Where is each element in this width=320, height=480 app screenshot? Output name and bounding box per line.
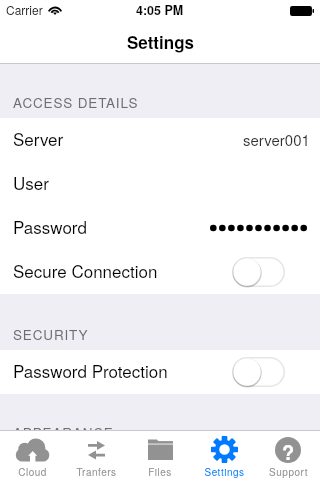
staticText: server001 <box>243 129 310 150</box>
staticText: Settings <box>204 465 245 479</box>
button[interactable]: Secure Connection <box>0 250 320 294</box>
staticText: Tranfers <box>76 465 117 479</box>
staticText: Server <box>13 126 64 150</box>
staticText: ACCESS DETAILS <box>13 93 139 112</box>
staticText: ? <box>282 437 295 462</box>
button[interactable]: Toggle <box>232 357 285 387</box>
staticText: APPEARANCE <box>13 423 114 442</box>
button[interactable]: Cloud <box>0 431 64 480</box>
button[interactable]: Server <box>0 118 320 162</box>
button[interactable]: ? <box>256 431 320 480</box>
staticText: Files <box>148 465 172 479</box>
button[interactable]: Files <box>128 431 192 480</box>
staticText: 4:05 PM <box>136 1 184 19</box>
staticText: User <box>13 170 49 194</box>
staticText: Secure Connection <box>13 258 158 282</box>
staticText: Password <box>13 214 87 238</box>
staticText: Cloud <box>18 465 47 479</box>
staticText: Support <box>269 465 308 479</box>
staticText: SECURITY <box>13 325 89 344</box>
button[interactable]: Toggle <box>232 257 285 287</box>
button[interactable]: Password <box>0 206 320 250</box>
staticText: Carrier <box>6 1 43 18</box>
button[interactable]: User <box>0 162 320 206</box>
button[interactable]: Tranfers <box>64 431 128 480</box>
staticText: Password Protection <box>13 358 168 382</box>
staticText: Settings <box>127 30 194 54</box>
button[interactable]: Settings <box>192 431 256 480</box>
button[interactable]: Password Protection <box>0 350 320 394</box>
